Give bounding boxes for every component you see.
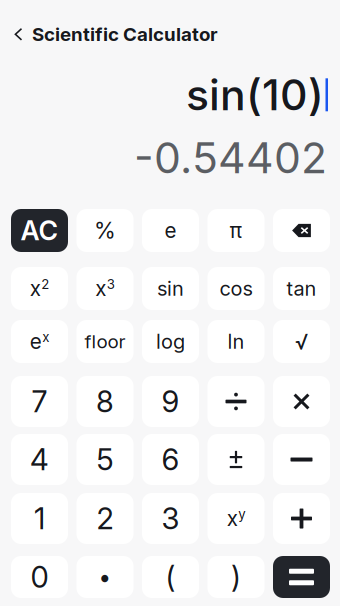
button[interactable]: 1 (11, 493, 68, 544)
staticText: cos (219, 276, 252, 301)
button[interactable]: AC (11, 209, 68, 252)
button[interactable]: 5 (76, 434, 133, 485)
button[interactable]: √ (273, 320, 330, 363)
button[interactable]: 4 (11, 434, 68, 485)
button[interactable]: • (76, 556, 133, 598)
staticText: π (229, 218, 242, 243)
staticText: y (238, 506, 245, 522)
button[interactable]: Delete (273, 209, 330, 252)
button[interactable]: π (207, 209, 264, 252)
button[interactable]: x (76, 267, 133, 310)
button[interactable]: Plus or minus (207, 434, 264, 485)
staticText: AC (20, 214, 58, 247)
staticText: x (30, 276, 41, 301)
staticText: 7 (31, 384, 47, 419)
button[interactable]: e (11, 320, 68, 363)
button[interactable]: Plus (273, 493, 330, 544)
staticText: % (94, 217, 116, 244)
button[interactable]: log (142, 320, 199, 363)
staticText: e (164, 218, 176, 243)
staticText: 8 (96, 384, 114, 419)
button[interactable]: e (142, 209, 199, 252)
button[interactable]: Multiply (273, 376, 330, 427)
staticText: log (156, 329, 185, 354)
button[interactable]: 3 (142, 493, 199, 544)
staticText: 3 (161, 501, 179, 536)
button[interactable]: Minus (273, 434, 330, 485)
staticText: sin(10) (186, 69, 324, 121)
button[interactable]: 2 (76, 493, 133, 544)
staticText: 6 (161, 442, 179, 477)
button[interactable]: 9 (142, 376, 199, 427)
staticText: x (42, 329, 49, 345)
button[interactable]: ln (207, 320, 264, 363)
staticText: 3 (107, 276, 115, 292)
staticText: sin (157, 276, 184, 301)
staticText: e (30, 329, 42, 354)
staticText: 2 (41, 276, 49, 292)
staticText: 2 (96, 501, 113, 536)
staticText: -0.54402 (134, 132, 327, 184)
staticText: tan (286, 276, 316, 301)
button[interactable]: sin (142, 267, 199, 310)
button[interactable]: floor (76, 320, 133, 363)
button[interactable]: Scientific Calculator (0, 16, 230, 53)
staticText: ln (227, 329, 244, 354)
staticText: Scientific Calculator (32, 23, 218, 46)
staticText: 4 (30, 442, 49, 477)
staticText: ) (231, 559, 241, 595)
staticText: √ (295, 329, 308, 354)
staticText: 0 (30, 559, 48, 595)
staticText: 9 (161, 384, 179, 419)
staticText: • (98, 563, 111, 591)
staticText: 1 (34, 501, 45, 536)
staticText: floor (84, 330, 125, 353)
button[interactable]: 0 (11, 556, 68, 598)
button[interactable]: Divide (207, 376, 264, 427)
button[interactable]: cos (207, 267, 264, 310)
staticText: x (227, 506, 238, 531)
staticText: ( (165, 559, 175, 595)
button[interactable]: ) (207, 556, 264, 598)
button[interactable]: tan (273, 267, 330, 310)
button[interactable]: 6 (142, 434, 199, 485)
button[interactable]: x (207, 493, 264, 544)
button[interactable]: x (11, 267, 68, 310)
button[interactable]: 8 (76, 376, 133, 427)
button[interactable]: 7 (11, 376, 68, 427)
button[interactable]: % (76, 209, 133, 252)
staticText: 5 (96, 442, 113, 477)
button[interactable]: ( (142, 556, 199, 598)
staticText: x (95, 276, 106, 301)
button[interactable]: Equals (273, 556, 330, 598)
